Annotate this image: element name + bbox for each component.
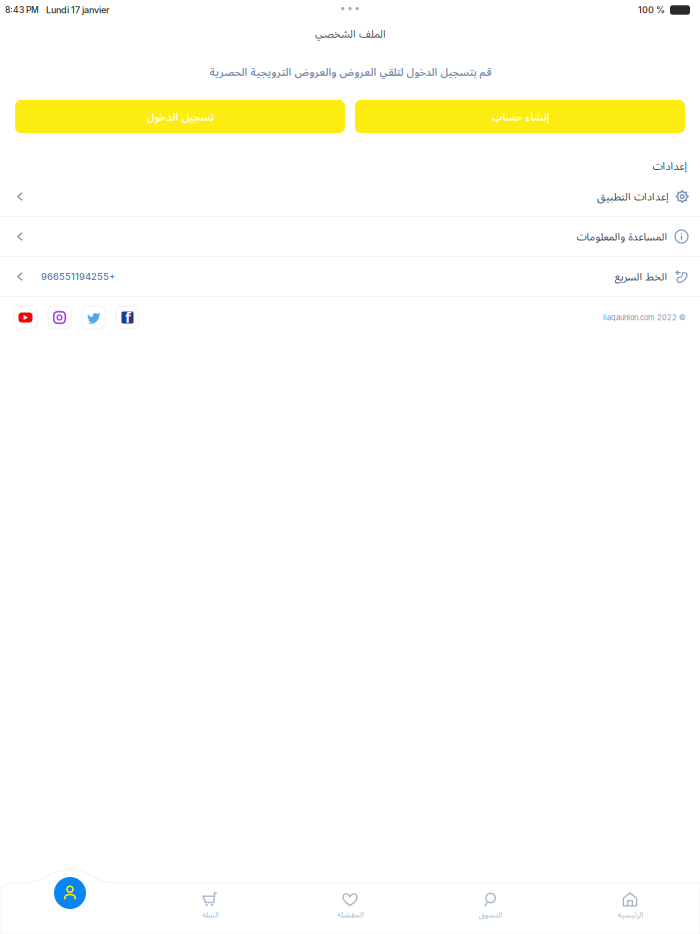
button[interactable]: Facebook — [116, 306, 139, 329]
button[interactable]: Instagram — [48, 306, 71, 329]
button[interactable]: إنشاء حساب — [355, 100, 685, 133]
button[interactable]: المساعدة والمعلومات — [0, 217, 700, 257]
button[interactable]: تسجيل الدخول — [15, 100, 345, 133]
staticText: 8:43 PM — [5, 5, 39, 15]
staticText: إعدادات التطبيق — [596, 189, 668, 204]
button[interactable]: السلة — [140, 883, 280, 934]
button[interactable]: المفضلة — [280, 883, 420, 934]
staticText: f — [125, 307, 131, 327]
staticText: الرئيسية — [617, 909, 643, 920]
staticText: المساعدة والمعلومات — [576, 229, 667, 244]
button[interactable]: التسوق — [420, 883, 560, 934]
staticText: Lundi 17 janvier — [46, 4, 110, 15]
button[interactable]: YouTube — [14, 306, 37, 329]
staticText: 100 % — [638, 4, 665, 15]
staticText: الخط السريع — [614, 269, 667, 284]
button[interactable]: Profile — [54, 877, 86, 909]
staticText: الملف الشخصي — [314, 26, 385, 41]
button[interactable]: إعدادات التطبيق — [0, 177, 700, 217]
staticText: تسجيل الدخول — [146, 109, 214, 124]
staticText: المفضلة — [336, 909, 363, 920]
staticText: السلة — [201, 909, 218, 920]
staticText: إنشاء حساب — [491, 109, 549, 124]
staticText: التسوق — [478, 909, 502, 920]
button[interactable]: Twitter — [82, 306, 105, 329]
staticText: قم بتسجيل الدخول لتلقي العروض والعروض ال… — [209, 65, 491, 79]
staticText: إعدادات — [652, 159, 687, 173]
staticText: liaqaunion.com 2022 © — [603, 313, 686, 322]
button[interactable]: 966551194255+ — [0, 257, 700, 297]
staticText: 966551194255+ — [41, 271, 115, 282]
button[interactable]: الرئيسية — [560, 883, 700, 934]
